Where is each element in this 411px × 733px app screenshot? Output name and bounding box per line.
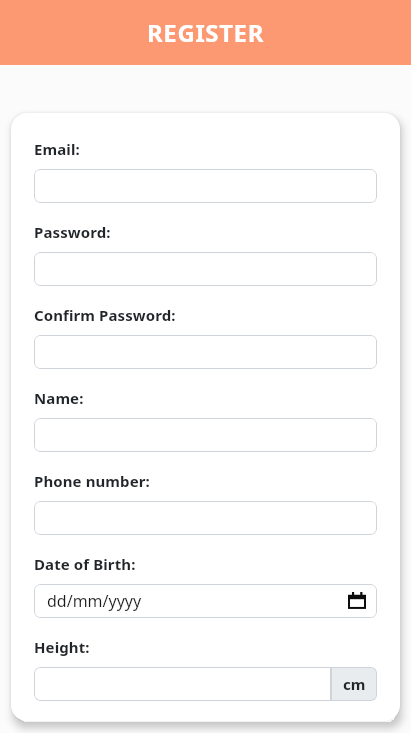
staticText: Password: xyxy=(34,222,111,242)
button[interactable]: dd/mm/yyyy xyxy=(34,584,377,618)
staticText: Email: xyxy=(34,139,80,159)
button[interactable]: Open date picker xyxy=(348,592,366,610)
button[interactable] xyxy=(34,169,377,203)
button[interactable]: cm xyxy=(331,667,377,701)
button[interactable] xyxy=(34,252,377,286)
staticText: cm xyxy=(343,674,366,694)
staticText: dd/mm/yyyy xyxy=(47,590,142,612)
staticText: REGISTER xyxy=(147,16,264,49)
staticText: Confirm Password: xyxy=(34,305,176,325)
button[interactable] xyxy=(34,667,331,701)
button[interactable] xyxy=(34,501,377,535)
staticText: Date of Birth: xyxy=(34,554,136,574)
button[interactable] xyxy=(34,335,377,369)
staticText: Height: xyxy=(34,637,90,657)
staticText: Name: xyxy=(34,388,84,408)
button[interactable] xyxy=(34,418,377,452)
staticText: Phone number: xyxy=(34,471,150,491)
